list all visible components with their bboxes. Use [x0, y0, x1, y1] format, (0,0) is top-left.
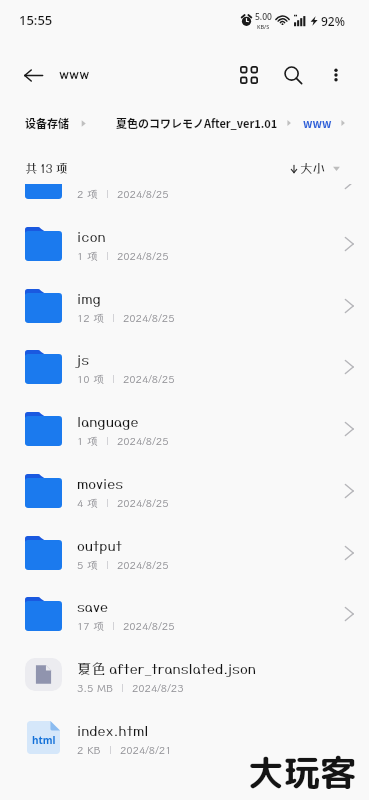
staticText: 2 项	[77, 187, 98, 201]
staticText: language	[77, 413, 332, 430]
staticText: 2024/8/25	[117, 249, 169, 263]
button[interactable]: 2 项	[0, 184, 369, 213]
staticText: index.html	[77, 722, 332, 739]
button[interactable]: 夏色のコワレモノAfter_ver1.01	[116, 115, 278, 131]
staticText: 1 项	[77, 249, 98, 263]
staticText: 2 KB	[77, 743, 101, 757]
button[interactable]: language	[0, 398, 369, 460]
staticText: 3.5 MB	[77, 681, 113, 695]
staticText: img	[77, 290, 332, 307]
staticText: 夏色 after_translated.json	[77, 660, 332, 677]
button[interactable]: icon	[0, 213, 369, 275]
staticText: 2024/8/25	[117, 558, 169, 572]
staticText: 17 项	[77, 619, 104, 633]
staticText: 共 13 项	[25, 161, 69, 176]
staticText: www	[59, 66, 90, 82]
button[interactable]: 大小	[289, 161, 341, 176]
button[interactable]: html	[0, 707, 369, 769]
button[interactable]: movies	[0, 460, 369, 522]
button[interactable]: 夏色 after_translated.json	[0, 645, 369, 707]
staticText: output	[77, 537, 332, 554]
button[interactable]: More options	[316, 55, 356, 95]
staticText: 4 项	[77, 496, 98, 510]
button[interactable]: Grid view	[229, 55, 269, 95]
button[interactable]: save	[0, 583, 369, 645]
staticText: 1 项	[77, 434, 98, 448]
staticText: 15:55	[19, 11, 53, 29]
button[interactable]: 设备存储	[25, 115, 69, 131]
staticText: 2024/8/23	[132, 681, 184, 695]
staticText: 大玩客	[248, 747, 357, 797]
staticText: 10 项	[77, 372, 104, 386]
staticText: 大小	[300, 161, 326, 176]
staticText: KB/S	[257, 23, 270, 30]
staticText: 12 项	[77, 311, 104, 325]
staticText: 2024/8/25	[117, 187, 169, 201]
staticText: html	[32, 733, 56, 747]
button[interactable]: js	[0, 336, 369, 398]
staticText: save	[77, 598, 332, 615]
button[interactable]: output	[0, 522, 369, 584]
staticText: 2024/8/21	[120, 743, 172, 757]
staticText: 5 项	[77, 558, 98, 572]
staticText: 2024/8/25	[123, 619, 175, 633]
staticText: 2024/8/25	[117, 434, 169, 448]
staticText: 2024/8/25	[123, 372, 175, 386]
staticText: movies	[77, 475, 332, 492]
button[interactable]: Search	[273, 55, 313, 95]
staticText: 2024/8/25	[117, 496, 169, 510]
staticText: js	[77, 351, 332, 368]
staticText: 92%	[321, 13, 345, 29]
button[interactable]: Back	[13, 55, 53, 95]
staticText: 5.00	[255, 11, 272, 23]
button[interactable]: www	[303, 115, 332, 131]
staticText: 2024/8/25	[123, 311, 175, 325]
button[interactable]: img	[0, 275, 369, 337]
staticText: icon	[77, 228, 332, 245]
